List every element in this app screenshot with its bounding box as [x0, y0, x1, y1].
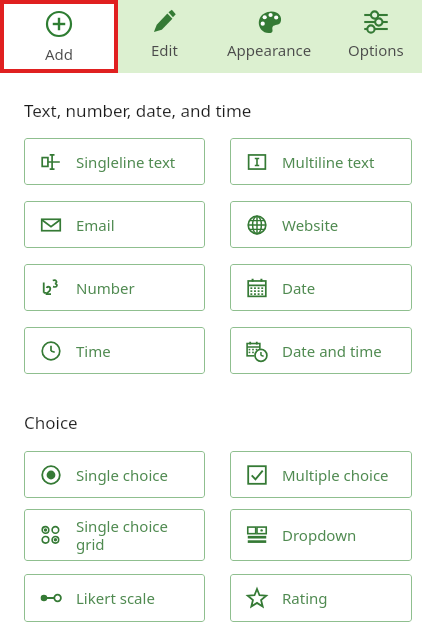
staticText: Text, number, date, and time: [24, 99, 252, 122]
staticText: Likert scale: [76, 588, 155, 608]
button[interactable]: Single choice: [24, 451, 205, 498]
button[interactable]: Email: [24, 201, 205, 248]
button[interactable]: Date and time: [230, 327, 412, 374]
button[interactable]: Website: [230, 201, 412, 248]
button[interactable]: Date: [230, 264, 412, 311]
button[interactable]: Multiple choice: [230, 451, 412, 498]
button[interactable]: Appearance: [210, 0, 329, 73]
staticText: Time: [76, 341, 111, 361]
staticText: Options: [348, 40, 404, 60]
staticText: Single choice grid: [76, 516, 168, 555]
staticText: Website: [282, 215, 339, 235]
staticText: Choice: [24, 411, 78, 434]
staticText: Rating: [282, 588, 328, 608]
button[interactable]: Edit: [118, 0, 210, 73]
staticText: Date and time: [282, 341, 382, 361]
button[interactable]: Single choice grid: [24, 509, 205, 561]
staticText: Multiline text: [282, 152, 375, 172]
staticText: Multiple choice: [282, 465, 389, 485]
staticText: Singleline text: [76, 152, 176, 172]
staticText: Appearance: [227, 40, 312, 60]
button[interactable]: Options: [329, 0, 422, 73]
staticText: Single choice: [76, 465, 168, 485]
staticText: Email: [76, 215, 115, 235]
button[interactable]: Multiline text: [230, 138, 412, 185]
staticText: Dropdown: [282, 525, 357, 545]
button[interactable]: Rating: [230, 574, 412, 622]
button[interactable]: Time: [24, 327, 205, 374]
staticText: Add: [45, 44, 74, 64]
staticText: Date: [282, 278, 316, 298]
button[interactable]: Likert scale: [24, 574, 205, 622]
button[interactable]: Number: [24, 264, 205, 311]
button[interactable]: Add: [4, 4, 114, 69]
button[interactable]: Singleline text: [24, 138, 205, 185]
staticText: Edit: [151, 40, 178, 60]
staticText: Number: [76, 278, 135, 298]
button[interactable]: Dropdown: [230, 509, 412, 561]
